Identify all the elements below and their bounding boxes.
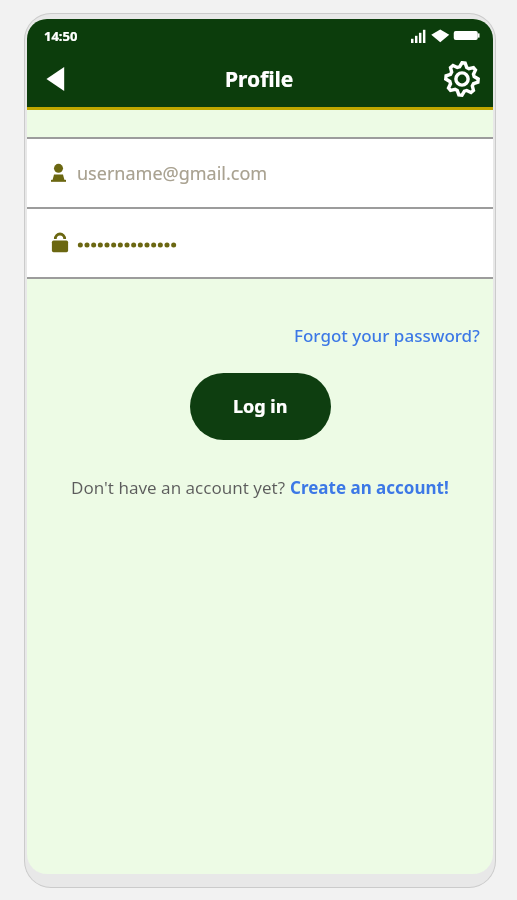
button[interactable]: Log in xyxy=(190,373,331,440)
staticText: Don't have an account yet? xyxy=(71,476,290,499)
staticText: Forgot your password? xyxy=(294,324,480,347)
staticText: Log in xyxy=(233,394,288,419)
button[interactable]: Back xyxy=(27,51,87,107)
button[interactable]: username@gmail.com xyxy=(27,139,493,207)
staticText: 14:50 xyxy=(44,27,78,45)
staticText: username@gmail.com xyxy=(77,161,268,186)
staticText: Create an account! xyxy=(290,476,449,499)
staticText: Profile xyxy=(225,65,294,94)
button[interactable]: Create an account! xyxy=(290,476,449,499)
button[interactable] xyxy=(27,209,493,277)
button[interactable]: Settings xyxy=(431,51,493,107)
button[interactable]: Forgot your password? xyxy=(294,321,493,350)
